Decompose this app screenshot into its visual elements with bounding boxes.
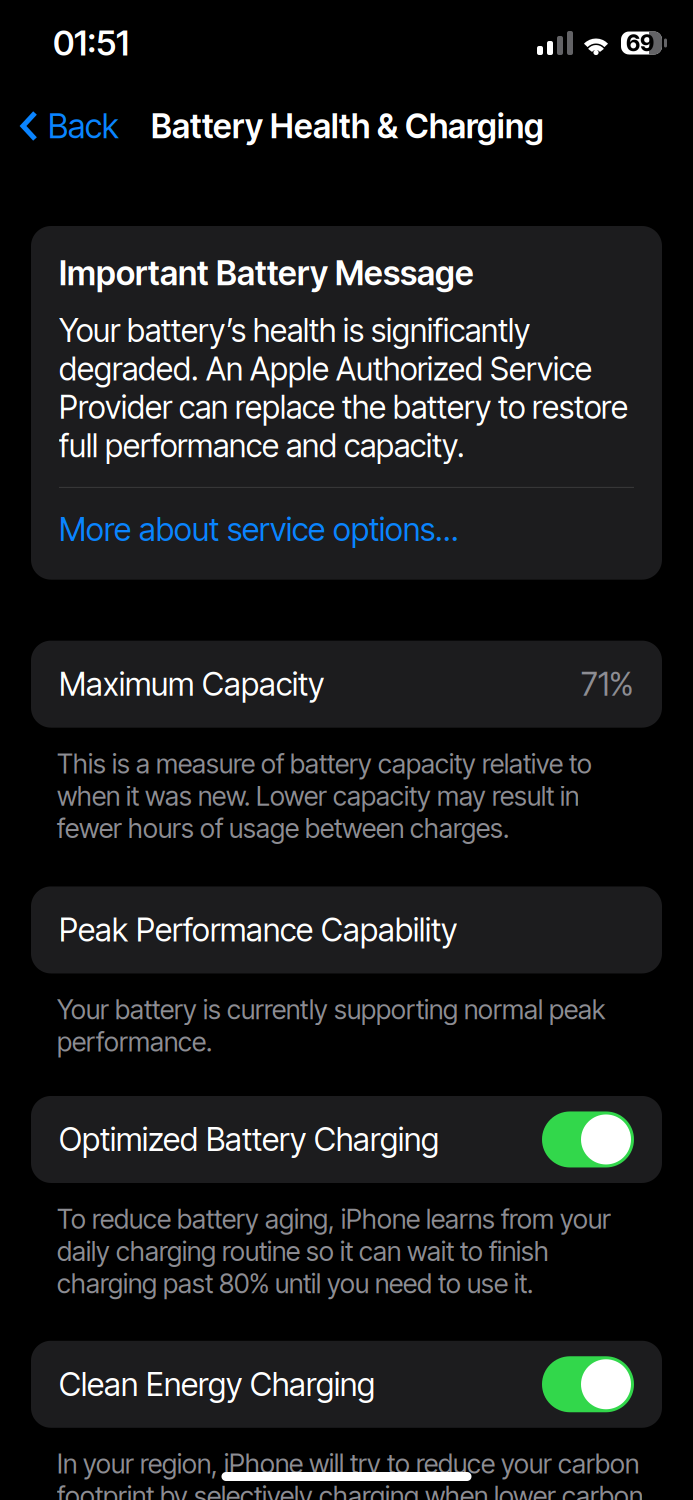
staticText: To reduce battery aging, iPhone learns f… [57, 1203, 611, 1300]
staticText: 71% [581, 665, 634, 703]
staticText: In your region, iPhone will try to reduc… [57, 1448, 643, 1500]
staticText: Optimized Battery Charging [59, 1120, 439, 1159]
button[interactable]: Clean Energy Charging [31, 1341, 662, 1428]
staticText: Clean Energy Charging [59, 1365, 375, 1404]
button[interactable]: More about service options... [59, 510, 634, 553]
staticText: More about service options... [59, 510, 459, 549]
staticText: Important Battery Message [59, 253, 474, 293]
staticText: Peak Performance Capability [59, 911, 457, 949]
staticText: Your battery’s health is significantly d… [59, 311, 628, 465]
button[interactable]: Back [0, 94, 129, 158]
staticText: Back [48, 106, 119, 146]
staticText: 01:51 [53, 22, 129, 64]
button[interactable]: Optimized Battery Charging [31, 1096, 662, 1183]
staticText: 69 [626, 29, 654, 57]
staticText: This is a measure of battery capacity re… [57, 748, 592, 844]
button[interactable]: Peak Performance Capability [31, 886, 662, 973]
button[interactable]: Maximum Capacity [31, 641, 662, 728]
staticText: Your battery is currently supporting nor… [57, 993, 605, 1058]
staticText: Battery Health & Charging [151, 106, 544, 146]
staticText: Maximum Capacity [59, 665, 324, 703]
